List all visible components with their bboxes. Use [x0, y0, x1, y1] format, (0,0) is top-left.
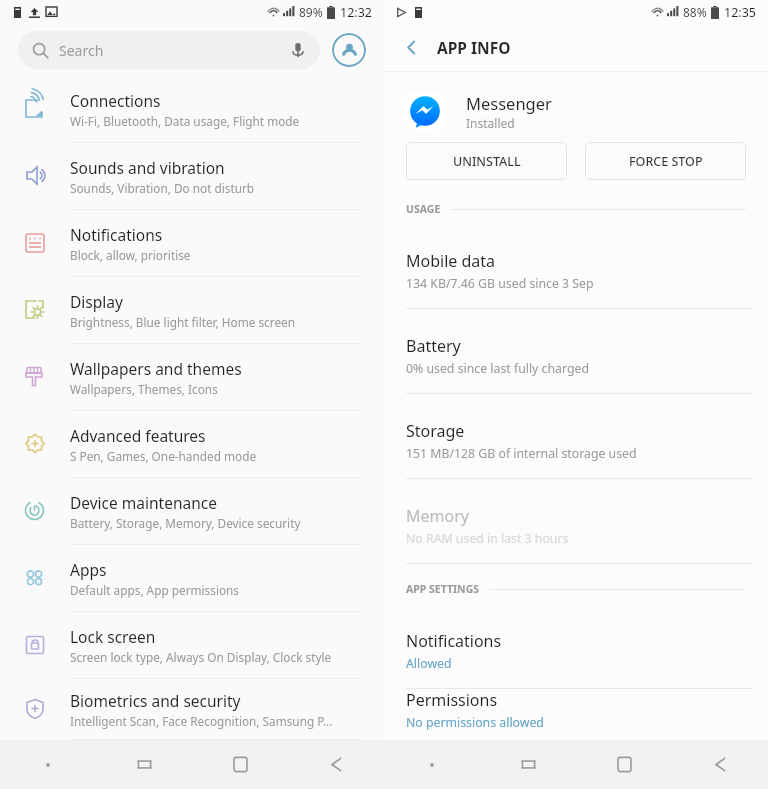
staticText: Battery: [406, 335, 461, 357]
staticText: 88%: [683, 4, 707, 20]
button[interactable]: Back: [384, 24, 768, 71]
staticText: Wi-Fi, Bluetooth, Data usage, Flight mod…: [70, 113, 300, 129]
staticText: Biometrics and security: [70, 690, 241, 711]
other: Voice search: [290, 42, 306, 58]
staticText: Memory: [406, 505, 469, 527]
staticText: APP SETTINGS: [406, 582, 480, 596]
button[interactable]: Battery: [384, 309, 768, 394]
staticText: Installed: [466, 115, 515, 131]
staticText: Brightness, Blue light filter, Home scre…: [70, 314, 295, 330]
staticText: Apps: [70, 559, 107, 580]
button[interactable]: Memory: [384, 479, 768, 564]
button[interactable]: Recents: [480, 740, 576, 789]
button[interactable]: Account: [332, 33, 366, 67]
staticText: Mobile data: [406, 250, 496, 272]
staticText: USAGE: [406, 202, 441, 216]
button[interactable]: Assistant: [0, 740, 96, 789]
button[interactable]: Apps: [0, 545, 384, 612]
button[interactable]: FORCE STOP: [585, 142, 746, 180]
button[interactable]: Mobile data: [384, 224, 768, 309]
staticText: 12:35: [724, 4, 756, 21]
staticText: Screen lock type, Always On Display, Clo…: [70, 649, 332, 665]
staticText: Intelligent Scan, Face Recognition, Sams…: [70, 713, 333, 729]
staticText: Advanced features: [70, 425, 206, 446]
staticText: 151 MB/128 GB of internal storage used: [406, 445, 637, 462]
staticText: 134 KB/7.46 GB used since 3 Sep: [406, 275, 594, 292]
button[interactable]: Assistant: [384, 740, 480, 789]
button[interactable]: Connections: [0, 76, 384, 143]
button[interactable]: Advanced features: [0, 411, 384, 478]
staticText: Sounds and vibration: [70, 157, 225, 178]
staticText: Display: [70, 291, 123, 312]
staticText: Connections: [70, 90, 161, 111]
staticText: No permissions allowed: [406, 714, 544, 731]
staticText: Sounds, Vibration, Do not disturb: [70, 180, 255, 196]
staticText: Permissions: [406, 689, 498, 711]
button[interactable]: Search: [18, 31, 320, 69]
button[interactable]: Display: [0, 277, 384, 344]
button[interactable]: Wallpapers and themes: [0, 344, 384, 411]
button[interactable]: Home: [576, 740, 672, 789]
button[interactable]: Home: [192, 740, 288, 789]
staticText: Storage: [406, 420, 465, 442]
staticText: Wallpapers and themes: [70, 358, 242, 379]
button[interactable]: Sounds and vibration: [0, 143, 384, 210]
staticText: Default apps, App permissions: [70, 582, 240, 598]
staticText: Notifications: [70, 224, 163, 245]
staticText: 12:32: [340, 4, 372, 21]
staticText: Wallpapers, Themes, Icons: [70, 381, 218, 397]
button[interactable]: Notifications: [384, 604, 768, 689]
staticText: UNINSTALL: [453, 153, 521, 170]
button[interactable]: Notifications: [0, 210, 384, 277]
button[interactable]: Lock screen: [0, 612, 384, 679]
staticText: 89%: [299, 4, 323, 20]
staticText: APP INFO: [437, 37, 511, 58]
button[interactable]: Messenger: [384, 80, 768, 142]
button[interactable]: Recents: [96, 740, 192, 789]
button[interactable]: Biometrics and security: [0, 679, 384, 740]
button[interactable]: Device maintenance: [0, 478, 384, 545]
staticText: Notifications: [406, 630, 502, 652]
staticText: 0% used since last fully charged: [406, 360, 589, 377]
staticText: Allowed: [406, 655, 452, 672]
button[interactable]: Permissions: [384, 689, 768, 740]
staticText: Block, allow, prioritise: [70, 247, 191, 263]
staticText: Messenger: [466, 92, 552, 114]
staticText: No RAM used in last 3 hours: [406, 530, 569, 547]
button[interactable]: Back: [288, 740, 384, 789]
staticText: Search: [59, 41, 104, 60]
staticText: FORCE STOP: [629, 153, 703, 170]
staticText: Battery, Storage, Memory, Device securit…: [70, 515, 301, 531]
button[interactable]: Storage: [384, 394, 768, 479]
staticText: Device maintenance: [70, 492, 217, 513]
button[interactable]: UNINSTALL: [406, 142, 567, 180]
staticText: Lock screen: [70, 626, 156, 647]
button[interactable]: Back: [672, 740, 768, 789]
staticText: S Pen, Games, One-handed mode: [70, 448, 257, 464]
